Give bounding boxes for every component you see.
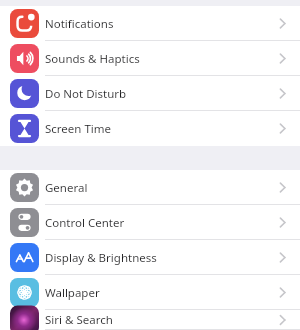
- button[interactable]: General: [0, 170, 300, 205]
- staticText: Siri & Search: [45, 312, 113, 328]
- staticText: Do Not Disturb: [45, 86, 127, 102]
- staticText: Screen Time: [45, 121, 112, 137]
- staticText: Sounds & Haptics: [45, 51, 140, 67]
- staticText: Wallpaper: [45, 285, 100, 301]
- staticText: General: [45, 180, 88, 196]
- button[interactable]: Siri & Search: [0, 310, 300, 330]
- staticText: Notifications: [45, 16, 114, 32]
- button[interactable]: Display & Brightness: [0, 240, 300, 275]
- button[interactable]: Do Not Disturb: [0, 76, 300, 111]
- button[interactable]: Screen Time: [0, 111, 300, 146]
- staticText: Display & Brightness: [45, 250, 157, 266]
- button[interactable]: Notifications: [0, 6, 300, 41]
- button[interactable]: Wallpaper: [0, 275, 300, 310]
- button[interactable]: Sounds & Haptics: [0, 41, 300, 76]
- button[interactable]: Control Center: [0, 205, 300, 240]
- staticText: Control Center: [45, 215, 125, 231]
